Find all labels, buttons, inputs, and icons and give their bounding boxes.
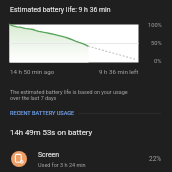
staticText: 100% [148,22,162,29]
staticText: RECENT BATTERY USAGE [10,110,75,117]
staticText: 50% [151,40,162,47]
staticText: 0% [154,58,162,65]
staticText: Estimated battery life: 9 h 36 min [10,6,111,14]
staticText: The estimated battery life is based on y… [10,89,128,101]
button[interactable]: Screen [0,146,172,172]
staticText: 14h 49m 53s on battery [10,128,93,137]
staticText: 9 h 36 min left [99,68,139,75]
staticText: 22% [149,155,162,163]
staticText: Screen [38,151,60,159]
staticText: Used for 3 h 24 min [38,162,86,168]
staticText: 14 h 50 min ago [10,68,55,75]
